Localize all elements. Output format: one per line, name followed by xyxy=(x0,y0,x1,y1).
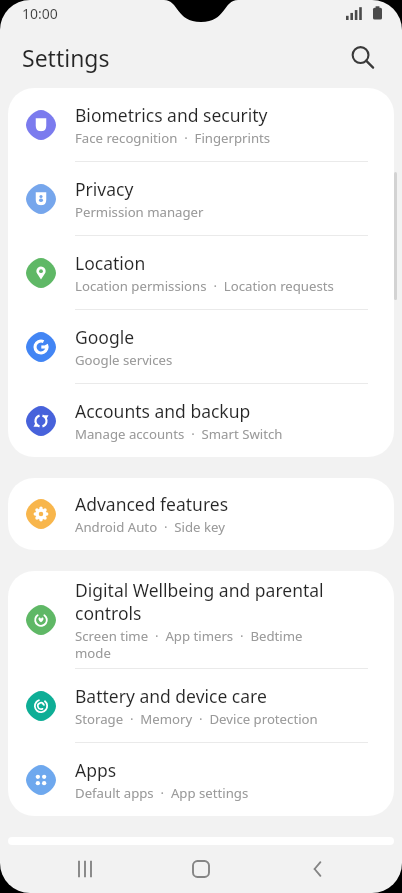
staticText: Privacy xyxy=(75,177,134,201)
button[interactable]: Search xyxy=(340,35,384,79)
button[interactable]: Accounts and backup xyxy=(8,384,394,457)
staticText: Permission manager xyxy=(75,203,204,221)
button[interactable]: Home xyxy=(169,845,233,893)
staticText: Screen time · App timers · Bedtime mode xyxy=(75,627,334,661)
staticText: Location permissions · Location requests xyxy=(75,277,334,295)
staticText: Settings xyxy=(22,42,110,73)
button[interactable]: Biometrics and security xyxy=(8,88,394,162)
staticText: Apps xyxy=(75,758,117,782)
staticText: Digital Wellbeing and parental controls xyxy=(75,578,334,625)
staticText: Storage · Memory · Device protection xyxy=(75,710,318,728)
button[interactable]: Battery and device care xyxy=(8,669,394,743)
button[interactable]: Advanced features xyxy=(8,478,394,550)
staticText: Android Auto · Side key xyxy=(75,518,225,536)
button[interactable]: Back xyxy=(286,845,350,893)
button[interactable]: Privacy xyxy=(8,162,394,236)
staticText: Biometrics and security xyxy=(75,103,268,127)
staticText: Face recognition · Fingerprints xyxy=(75,129,271,147)
staticText: 10:00 xyxy=(22,4,58,23)
staticText: Accounts and backup xyxy=(75,399,251,423)
button[interactable]: Digital Wellbeing and parental controls xyxy=(8,571,394,669)
staticText: Battery and device care xyxy=(75,684,267,708)
staticText: Manage accounts · Smart Switch xyxy=(75,425,283,443)
button[interactable]: Google xyxy=(8,310,394,384)
button[interactable]: Location xyxy=(8,236,394,310)
staticText: Google xyxy=(75,325,135,349)
staticText: Location xyxy=(75,251,146,275)
button[interactable]: Apps xyxy=(8,743,394,816)
button[interactable]: Recent apps xyxy=(53,845,117,893)
staticText: Advanced features xyxy=(75,492,229,516)
staticText: Google services xyxy=(75,351,173,369)
staticText: Default apps · App settings xyxy=(75,784,249,802)
